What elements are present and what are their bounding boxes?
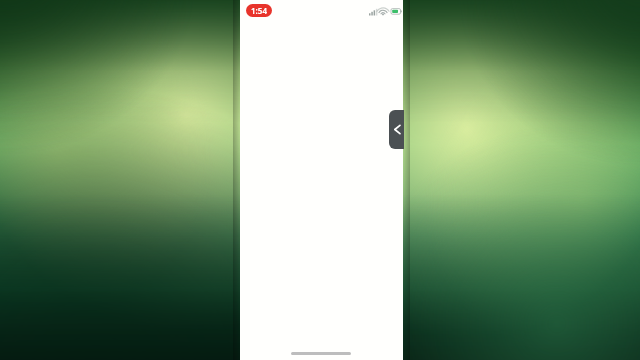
- staticText: 1:54: [251, 5, 267, 16]
- button[interactable]: Back: [389, 110, 404, 149]
